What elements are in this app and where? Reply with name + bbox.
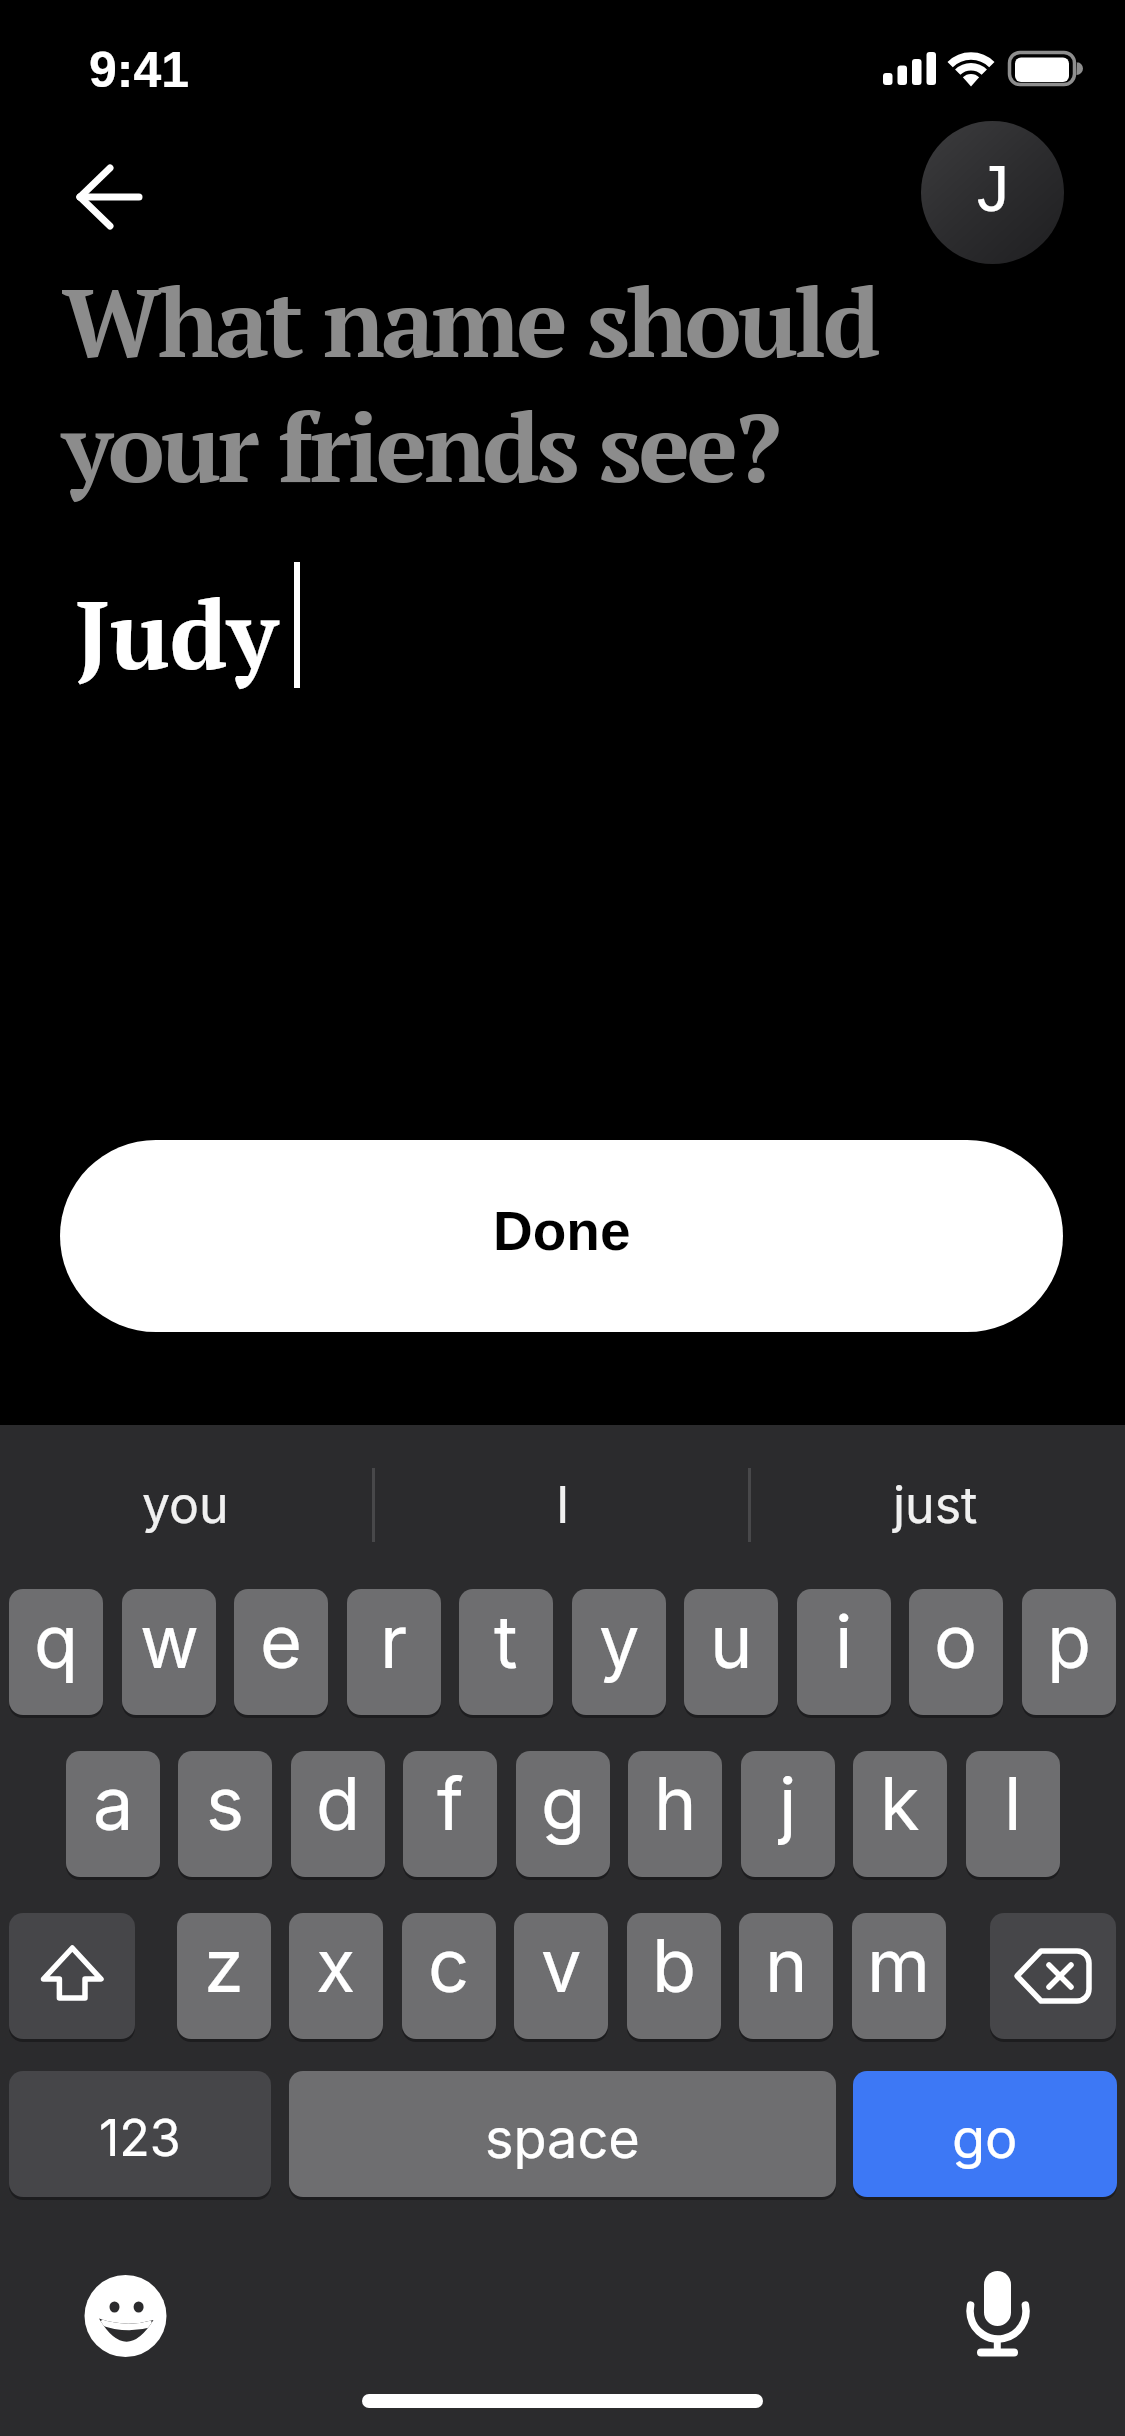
button[interactable]: k <box>853 1751 947 1877</box>
staticText: 123 <box>99 2108 181 2168</box>
staticText: j <box>779 1760 797 1847</box>
staticText: m <box>867 1922 931 2009</box>
button[interactable]: v <box>514 1913 608 2039</box>
button[interactable]: a <box>66 1751 160 1877</box>
staticText: p <box>1047 1598 1092 1685</box>
button[interactable] <box>9 1913 135 2039</box>
staticText: g <box>541 1760 586 1847</box>
button[interactable]: I <box>377 1447 748 1557</box>
button[interactable]: x <box>289 1913 383 2039</box>
staticText: f <box>437 1760 464 1847</box>
staticText: c <box>428 1922 470 2009</box>
staticText: v <box>541 1922 582 2009</box>
button[interactable]: e <box>234 1589 328 1715</box>
button[interactable]: J <box>921 121 1064 264</box>
staticText: y <box>599 1598 640 1685</box>
button[interactable]: c <box>402 1913 496 2039</box>
staticText: a <box>93 1760 134 1847</box>
button[interactable]: b <box>627 1913 721 2039</box>
staticText: go <box>952 2106 1018 2171</box>
staticText: just <box>893 1475 978 1535</box>
button[interactable] <box>62 152 158 242</box>
staticText: o <box>934 1598 978 1685</box>
button[interactable]: h <box>628 1751 722 1877</box>
button[interactable]: l <box>966 1751 1060 1877</box>
staticText: space <box>485 2106 640 2171</box>
button[interactable]: just <box>750 1447 1121 1557</box>
staticText: Judy <box>75 569 278 696</box>
button[interactable]: 123 <box>9 2071 271 2197</box>
button[interactable]: go <box>853 2071 1117 2197</box>
staticText: l <box>1004 1760 1022 1847</box>
staticText: t <box>494 1598 518 1685</box>
button[interactable]: i <box>797 1589 891 1715</box>
staticText: q <box>34 1598 79 1685</box>
button[interactable]: z <box>177 1913 271 2039</box>
staticText: r <box>380 1598 408 1685</box>
staticText: d <box>316 1760 361 1847</box>
button[interactable] <box>76 2269 172 2365</box>
staticText: u <box>710 1598 753 1685</box>
button[interactable]: y <box>572 1589 666 1715</box>
staticText: x <box>316 1922 356 2009</box>
staticText: k <box>880 1760 920 1847</box>
button[interactable] <box>990 1913 1116 2039</box>
staticText: What name should your friends see? <box>62 257 877 509</box>
button[interactable]: p <box>1022 1589 1116 1715</box>
button[interactable]: o <box>909 1589 1003 1715</box>
button[interactable]: n <box>739 1913 833 2039</box>
staticText: 9:41 <box>89 42 190 98</box>
button[interactable]: s <box>178 1751 272 1877</box>
staticText: w <box>140 1598 199 1685</box>
button[interactable]: q <box>9 1589 103 1715</box>
button[interactable]: f <box>403 1751 497 1877</box>
button[interactable]: Done <box>60 1140 1063 1332</box>
staticText: h <box>654 1760 697 1847</box>
button[interactable] <box>947 2258 1043 2368</box>
button[interactable]: m <box>852 1913 946 2039</box>
staticText: b <box>652 1922 697 2009</box>
button[interactable]: u <box>684 1589 778 1715</box>
button[interactable]: you <box>0 1447 371 1557</box>
staticText: J <box>977 153 1009 225</box>
staticText: Done <box>493 1200 631 1261</box>
button[interactable]: g <box>516 1751 610 1877</box>
button[interactable]: space <box>289 2071 836 2197</box>
staticText: you <box>142 1475 229 1535</box>
staticText: z <box>204 1922 244 2009</box>
staticText: s <box>206 1760 245 1847</box>
button[interactable]: t <box>459 1589 553 1715</box>
button[interactable]: j <box>741 1751 835 1877</box>
button[interactable]: w <box>122 1589 216 1715</box>
staticText: I <box>556 1475 570 1535</box>
button[interactable]: r <box>347 1589 441 1715</box>
staticText: i <box>835 1598 853 1685</box>
staticText: n <box>765 1922 808 2009</box>
staticText: e <box>260 1598 302 1685</box>
button[interactable]: d <box>291 1751 385 1877</box>
